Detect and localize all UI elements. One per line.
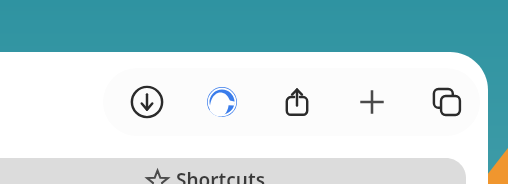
button[interactable]: Tabs xyxy=(420,75,474,129)
staticText: Shortcuts xyxy=(176,167,265,184)
button[interactable]: Downloads xyxy=(120,75,174,129)
button[interactable]: Shortcuts xyxy=(146,167,321,184)
button[interactable]: Share xyxy=(270,75,324,129)
button[interactable]: Browser home xyxy=(195,75,249,129)
button[interactable]: New tab xyxy=(345,75,399,129)
